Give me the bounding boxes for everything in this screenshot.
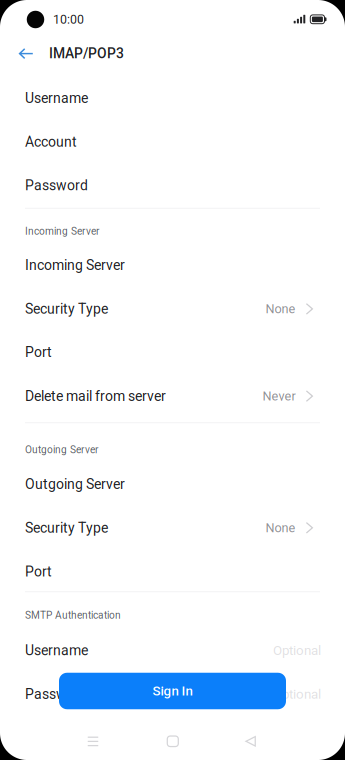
button[interactable]: Security Type xyxy=(0,287,345,330)
staticText: Port xyxy=(25,563,52,580)
staticText: Outgoing Server xyxy=(25,476,125,492)
staticText: Incoming Server xyxy=(25,257,125,273)
staticText: 10:00 xyxy=(53,12,84,27)
staticText: Delete mail from server xyxy=(25,388,166,404)
staticText: Password xyxy=(25,177,88,194)
staticText: Optional xyxy=(273,643,321,658)
staticText: None xyxy=(265,302,295,316)
staticText: IMAP/POP3 xyxy=(49,45,124,62)
staticText: Password xyxy=(25,686,88,702)
button[interactable]: Delete mail from server xyxy=(0,375,345,418)
staticText: SMTP Authentication xyxy=(25,609,121,621)
staticText: Optional xyxy=(273,686,321,702)
staticText: Security Type xyxy=(25,520,108,536)
button[interactable]: Password xyxy=(0,673,345,716)
button[interactable]: Back xyxy=(10,36,42,70)
button[interactable]: Sign In xyxy=(59,673,286,709)
staticText: Username xyxy=(25,90,88,106)
staticText: Never xyxy=(262,389,295,404)
button[interactable]: Password xyxy=(0,164,345,207)
button[interactable]: Back xyxy=(225,725,275,757)
button[interactable]: Security Type xyxy=(0,506,345,549)
staticText: Incoming Server xyxy=(25,225,99,237)
staticText: Sign In xyxy=(152,683,192,699)
button[interactable]: Username xyxy=(0,77,345,120)
button[interactable]: Incoming Server xyxy=(0,244,345,287)
staticText: None xyxy=(265,520,295,535)
button[interactable]: Username xyxy=(0,629,345,672)
button[interactable]: Home xyxy=(148,725,198,757)
staticText: Security Type xyxy=(25,301,108,317)
button[interactable]: Port xyxy=(0,331,345,374)
button[interactable]: Recent apps xyxy=(68,725,118,757)
staticText: Outgoing Server xyxy=(25,444,98,456)
button[interactable]: Account xyxy=(0,120,345,163)
staticText: Account xyxy=(25,134,77,150)
staticText: Username xyxy=(25,642,88,659)
button[interactable]: Port xyxy=(0,550,345,593)
button[interactable]: Outgoing Server xyxy=(0,463,345,506)
staticText: Port xyxy=(25,344,52,360)
